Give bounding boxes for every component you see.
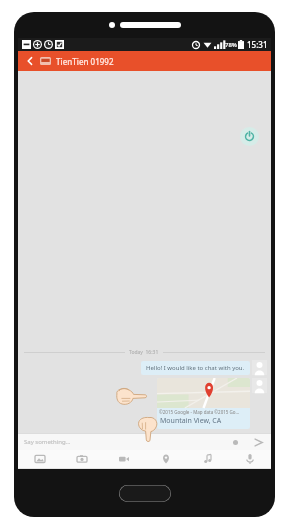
staticText: Mountain View, CA (160, 416, 222, 426)
button[interactable]: Back (24, 55, 36, 67)
button[interactable]: Say something... (18, 434, 227, 450)
button[interactable]: Audio (187, 450, 229, 468)
staticText: Today 16:31 (129, 349, 159, 356)
button[interactable]: Hello! I would like to chat with you. (141, 361, 250, 375)
staticText: TienTien 01992 (56, 56, 114, 67)
button[interactable]: Contact avatar (252, 360, 267, 375)
button[interactable]: Attach (227, 434, 243, 450)
staticText: 78% (225, 41, 237, 49)
button[interactable]: Connect (240, 127, 259, 146)
button[interactable]: ©2015 Google - Map data ©2015 Go… (157, 378, 250, 429)
staticText: Say something... (24, 438, 71, 446)
button[interactable]: Camera (61, 450, 103, 468)
button[interactable]: Video (103, 450, 145, 468)
button[interactable]: Send (249, 434, 267, 450)
staticText: Hello! I would like to chat with you. (146, 364, 245, 372)
button[interactable]: Contact avatar (252, 378, 267, 393)
button[interactable]: Location (145, 450, 187, 468)
button[interactable]: Back (18, 51, 271, 71)
button[interactable]: Gallery (18, 450, 61, 468)
staticText: 15:31 (247, 39, 268, 50)
staticText: ©2015 Google - Map data ©2015 Go… (159, 409, 240, 415)
button[interactable]: Home (119, 485, 171, 502)
button[interactable]: Voice (229, 450, 271, 468)
